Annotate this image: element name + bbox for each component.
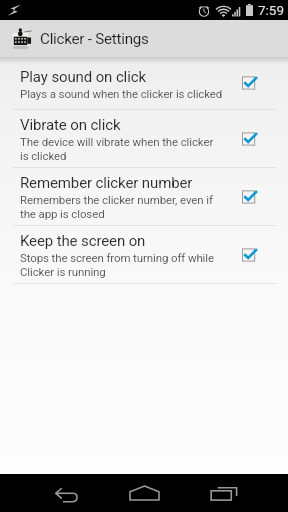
- staticText: Vibrate on click: [20, 116, 121, 134]
- button[interactable]: Remember clicker number: [0, 168, 288, 225]
- button[interactable]: Play sound on click: [242, 57, 288, 109]
- button[interactable]: Remember clicker number: [242, 168, 288, 225]
- staticText: Clicker - Settings: [40, 30, 149, 48]
- staticText: Play sound on click: [20, 68, 146, 86]
- button[interactable]: Vibrate on click: [242, 110, 288, 167]
- button[interactable]: Keep the screen on: [242, 226, 288, 283]
- button[interactable]: Home: [128, 474, 160, 512]
- staticText: Keep the screen on: [20, 232, 146, 250]
- button[interactable]: Back: [0, 474, 128, 512]
- button[interactable]: Vibrate on click: [0, 110, 288, 167]
- staticText: Plays a sound when the clicker is clicke…: [20, 87, 223, 100]
- staticText: The device will vibrate when the clicker…: [20, 135, 214, 163]
- staticText: Remember clicker number: [20, 174, 193, 192]
- button[interactable]: Recent apps: [160, 474, 288, 512]
- staticText: Stops the screen from turning off while …: [20, 251, 214, 279]
- button[interactable]: Keep the screen on: [0, 226, 288, 283]
- staticText: 7:59: [258, 2, 285, 18]
- staticText: Remembers the clicker number, even if th…: [20, 193, 213, 221]
- button[interactable]: Play sound on click: [0, 57, 288, 109]
